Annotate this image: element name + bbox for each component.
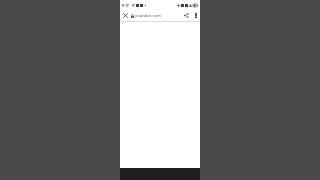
button[interactable]: Close xyxy=(120,10,130,21)
button[interactable]: More options xyxy=(192,10,200,21)
button[interactable]: Share xyxy=(181,10,192,21)
button[interactable]: youtube.com xyxy=(130,10,181,21)
staticText: youtube.com xyxy=(135,13,161,19)
